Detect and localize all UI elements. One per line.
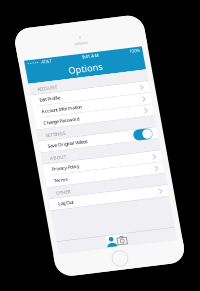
- staticText: Account Information: [25, 101, 60, 106]
- button[interactable]: Change Password: [18, 109, 121, 119]
- staticText: ABOUT: [25, 142, 39, 148]
- button[interactable]: Privacy Policy: [18, 150, 121, 160]
- staticText: Save Original Videos: [25, 131, 60, 137]
- staticText: ACCOUNT: [25, 81, 42, 86]
- button[interactable]: Terms: [18, 160, 121, 170]
- button[interactable]: Save Original Videos: [18, 129, 121, 139]
- button[interactable]: Account Information: [18, 99, 121, 109]
- staticText: Edit Profile: [25, 91, 43, 96]
- button[interactable]: Log Out: [18, 180, 121, 190]
- button[interactable]: Edit Profile: [18, 88, 121, 99]
- staticText: Change Password: [25, 111, 56, 116]
- staticText: Options: [54, 65, 84, 76]
- staticText: Terms: [25, 162, 37, 167]
- staticText: 9:41 AM: [68, 58, 83, 63]
- staticText: Privacy Policy: [25, 152, 49, 157]
- staticText: ••••• AT&T: [20, 58, 41, 63]
- staticText: SETTINGS: [25, 122, 42, 127]
